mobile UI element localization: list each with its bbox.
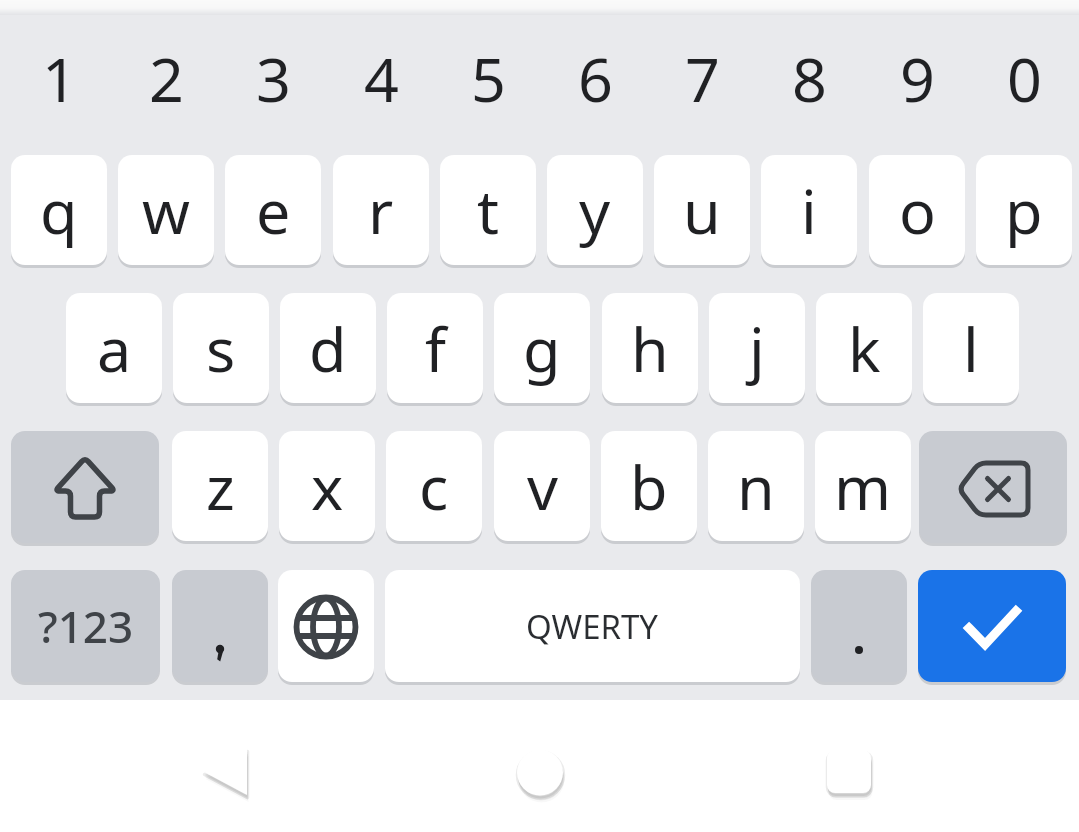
button[interactable]	[11, 431, 159, 543]
staticText: 3	[256, 37, 291, 120]
staticText: k	[848, 307, 881, 390]
button[interactable]: 4	[333, 14, 429, 142]
button[interactable]: 8	[761, 14, 857, 142]
button[interactable]	[919, 431, 1067, 543]
staticText: 8	[792, 37, 827, 120]
button[interactable]: i	[761, 155, 857, 265]
button[interactable]: 3	[225, 14, 321, 142]
staticText: f	[425, 307, 446, 390]
staticText: q	[40, 169, 78, 252]
staticText: 5	[471, 37, 506, 120]
staticText: c	[419, 445, 449, 528]
staticText: s	[206, 307, 236, 390]
button[interactable]: w	[118, 155, 214, 265]
button[interactable]	[918, 570, 1066, 682]
button[interactable]: e	[225, 155, 321, 265]
staticText: j	[749, 307, 765, 390]
button[interactable]: y	[547, 155, 643, 265]
button[interactable]	[180, 726, 276, 822]
staticText: l	[963, 307, 979, 390]
staticText: t	[477, 169, 500, 252]
staticText: QWERTY	[526, 604, 659, 649]
button[interactable]: c	[386, 431, 482, 541]
button[interactable]: f	[387, 293, 483, 403]
button[interactable]: 2	[118, 14, 214, 142]
button[interactable]: j	[709, 293, 805, 403]
button[interactable]: s	[173, 293, 269, 403]
button[interactable]: q	[11, 155, 107, 265]
staticText: e	[256, 169, 291, 252]
staticText: a	[97, 307, 132, 390]
staticText: y	[579, 169, 611, 252]
staticText: ?123	[38, 596, 134, 656]
button[interactable]: g	[494, 293, 590, 403]
staticText: h	[631, 307, 669, 390]
button[interactable]	[801, 726, 897, 822]
button[interactable]: p	[976, 155, 1072, 265]
button[interactable]	[811, 570, 907, 682]
button[interactable]: ?123	[11, 570, 160, 682]
button[interactable]: 5	[440, 14, 536, 142]
button[interactable]: b	[601, 431, 697, 541]
staticText: o	[899, 169, 936, 252]
staticText: 0	[1007, 37, 1042, 120]
button[interactable]: n	[708, 431, 804, 541]
staticText: 2	[149, 37, 184, 120]
button[interactable]: h	[602, 293, 698, 403]
button[interactable]: t	[440, 155, 536, 265]
button[interactable]	[492, 726, 588, 822]
button[interactable]: v	[494, 431, 590, 541]
button[interactable]: l	[923, 293, 1019, 403]
staticText: p	[1005, 169, 1043, 252]
button[interactable]: 6	[547, 14, 643, 142]
button[interactable]: u	[654, 155, 750, 265]
button[interactable]: m	[815, 431, 911, 541]
button[interactable]: r	[333, 155, 429, 265]
button[interactable]: 9	[869, 14, 965, 142]
button[interactable]: QWERTY	[385, 570, 800, 682]
staticText: x	[311, 445, 344, 528]
staticText: u	[683, 169, 721, 252]
button[interactable]	[172, 570, 268, 682]
staticText: b	[630, 445, 668, 528]
staticText: 4	[364, 37, 399, 120]
button[interactable]: 7	[654, 14, 750, 142]
staticText: r	[368, 169, 394, 252]
button[interactable]: 1	[11, 14, 107, 142]
button[interactable]: z	[172, 431, 268, 541]
staticText: 6	[578, 37, 613, 120]
button[interactable]: k	[816, 293, 912, 403]
staticText: z	[206, 445, 235, 528]
staticText: g	[523, 307, 561, 390]
button[interactable]: x	[279, 431, 375, 541]
button[interactable]: a	[66, 293, 162, 403]
staticText: 7	[685, 37, 720, 120]
staticText: 9	[900, 37, 935, 120]
button[interactable]: o	[869, 155, 965, 265]
staticText: w	[142, 169, 190, 252]
staticText: 1	[42, 37, 77, 120]
button[interactable]	[278, 570, 374, 682]
staticText: v	[527, 445, 558, 528]
button[interactable]: d	[280, 293, 376, 403]
staticText: n	[737, 445, 775, 528]
staticText: m	[834, 445, 892, 528]
staticText: i	[801, 169, 817, 252]
staticText: d	[309, 307, 347, 390]
button[interactable]: 0	[976, 14, 1072, 142]
